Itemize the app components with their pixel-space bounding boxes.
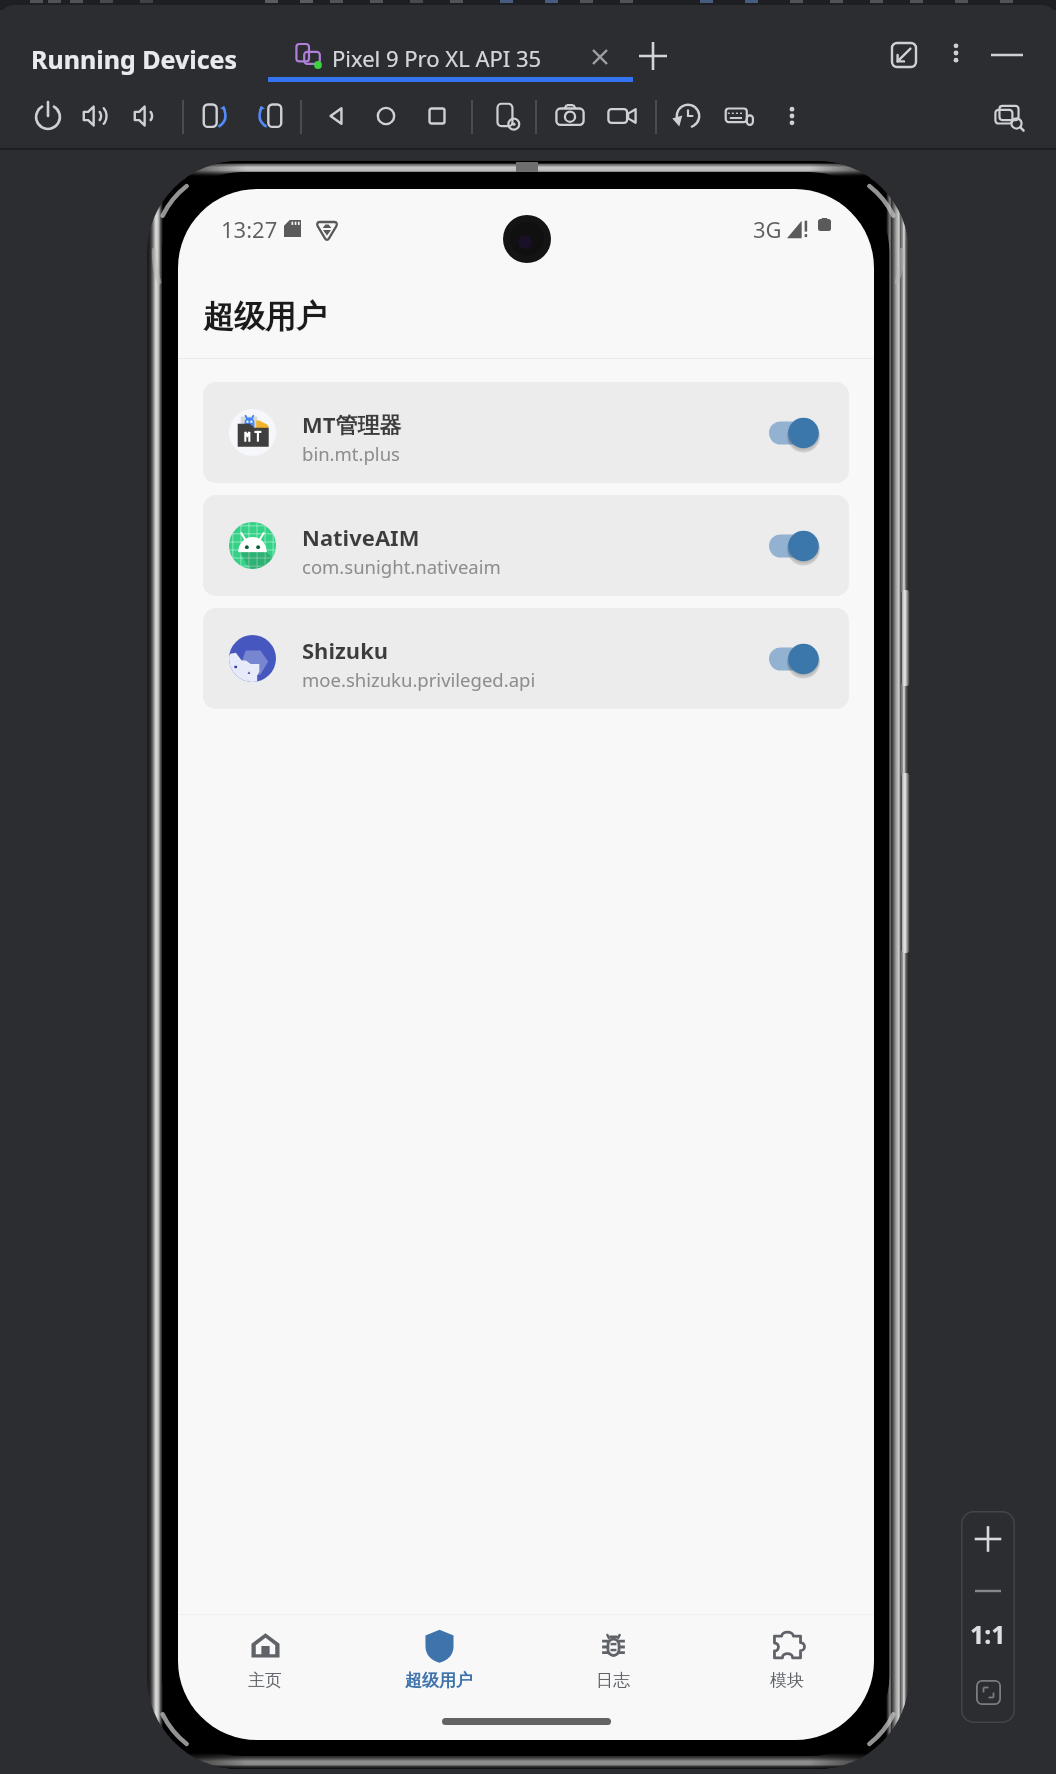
button[interactable]: Volume down <box>122 92 170 140</box>
button[interactable]: Shizuku <box>203 608 849 709</box>
button[interactable]: Toggle <box>769 636 834 682</box>
staticText: 主页 <box>248 1670 282 1691</box>
button[interactable]: 超级用户 <box>352 1615 526 1718</box>
staticText: com.sunight.nativeaim <box>302 554 501 579</box>
button[interactable]: Zoom in <box>966 1517 1010 1561</box>
staticText: MT管理器 <box>302 409 402 439</box>
button[interactable]: Device settings <box>483 92 531 140</box>
button[interactable]: Toggle <box>769 523 834 569</box>
button[interactable]: Volume up <box>71 92 119 140</box>
staticText: 模块 <box>770 1670 804 1691</box>
button[interactable]: Options <box>938 35 974 71</box>
button[interactable]: Rotate left <box>192 92 240 140</box>
button[interactable]: Add device <box>634 37 672 75</box>
button[interactable]: Overview <box>413 92 461 140</box>
button[interactable]: More <box>768 92 816 140</box>
button[interactable]: Display mode <box>985 92 1033 140</box>
staticText: bin.mt.plus <box>302 441 400 466</box>
button[interactable]: Close tab <box>582 39 618 75</box>
staticText: 日志 <box>596 1670 630 1691</box>
button[interactable]: Home <box>362 92 410 140</box>
button[interactable]: 模块 <box>700 1615 874 1718</box>
button[interactable]: Zoom out <box>966 1569 1010 1613</box>
staticText: Running Devices <box>31 42 238 76</box>
button[interactable]: Hide <box>987 35 1027 75</box>
button[interactable]: Power <box>24 92 72 140</box>
staticText: 超级用户 <box>405 1670 473 1691</box>
staticText: 13:27 <box>221 214 278 244</box>
staticText: 3G <box>753 214 782 244</box>
staticText: Pixel 9 Pro XL API 35 <box>332 43 542 73</box>
button[interactable]: MT管理器 <box>203 382 849 483</box>
button[interactable]: Rotate right <box>245 92 293 140</box>
staticText: Shizuku <box>302 635 389 665</box>
button[interactable]: 主页 <box>178 1615 352 1718</box>
button[interactable]: NativeAIM <box>203 495 849 596</box>
staticText: NativeAIM <box>302 522 420 552</box>
button[interactable]: History <box>664 92 712 140</box>
button[interactable]: Zoom to fit <box>966 1670 1010 1714</box>
button[interactable]: Zoom to actual size <box>966 1612 1010 1656</box>
button[interactable]: Screenshot <box>546 92 594 140</box>
staticText: 超级用户 <box>203 297 327 336</box>
button[interactable]: Hardware input <box>716 92 764 140</box>
button[interactable]: Minimize tool window <box>884 35 924 75</box>
staticText: 1:1 <box>970 1617 1006 1651</box>
button[interactable]: Record screen <box>598 92 646 140</box>
staticText: moe.shizuku.privileged.api <box>302 667 536 692</box>
button[interactable]: Back <box>312 92 360 140</box>
button[interactable]: 日志 <box>526 1615 700 1718</box>
button[interactable]: Toggle <box>769 410 834 456</box>
